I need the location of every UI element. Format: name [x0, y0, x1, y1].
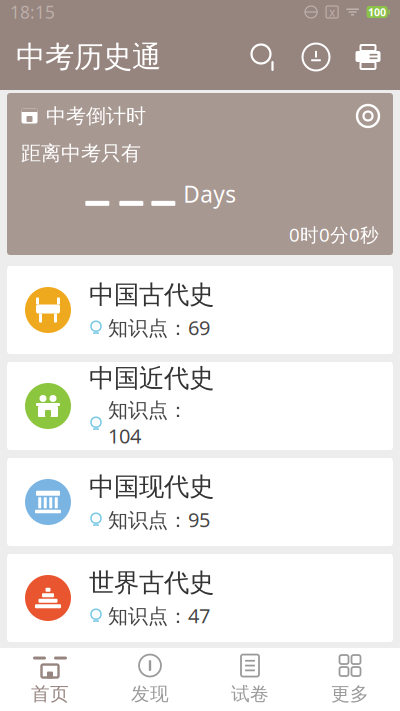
button[interactable]: Print — [342, 31, 394, 83]
button[interactable]: 首页 — [0, 648, 100, 710]
staticText: Days — [183, 179, 236, 209]
staticText: 中考历史通 — [16, 39, 161, 75]
staticText: 中国近代史 — [89, 363, 214, 394]
button[interactable]: Downloads — [290, 31, 342, 83]
button[interactable]: Countdown settings — [351, 99, 385, 133]
button[interactable]: 试卷 — [200, 648, 300, 710]
staticText: 100 — [368, 5, 386, 19]
button[interactable]: 中国古代史 — [7, 266, 393, 354]
staticText: 知识点：69 — [108, 314, 210, 341]
staticText: 中国现代史 — [89, 471, 214, 502]
button[interactable]: 发现 — [100, 648, 200, 710]
button[interactable]: 更多 — [300, 648, 400, 710]
staticText: 距离中考只有 — [21, 141, 141, 166]
staticText: 0时0分0秒 — [289, 222, 379, 247]
staticText: 18:15 — [10, 0, 55, 23]
staticText: 知识点：95 — [108, 506, 210, 533]
staticText: 中考倒计时 — [46, 104, 146, 128]
staticText: 首页 — [31, 682, 69, 705]
button[interactable]: 中国现代史 — [7, 458, 393, 546]
staticText: 知识点：47 — [108, 602, 210, 629]
staticText: 中国古代史 — [89, 279, 214, 310]
staticText: 发现 — [131, 682, 169, 705]
staticText: 更多 — [331, 682, 369, 705]
staticText: x — [329, 4, 335, 20]
button[interactable]: 中国近代史 — [7, 362, 393, 450]
staticText: 试卷 — [231, 682, 269, 705]
button[interactable]: 世界古代史 — [7, 554, 393, 642]
button[interactable]: Search — [238, 31, 290, 83]
staticText: 知识点：104 — [108, 398, 188, 449]
staticText: 世界古代史 — [89, 567, 214, 598]
